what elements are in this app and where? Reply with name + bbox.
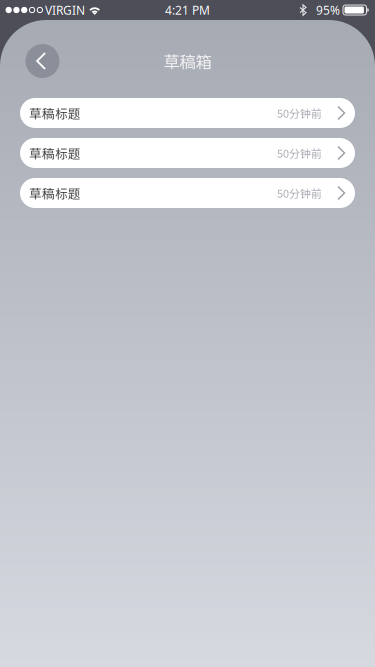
staticText: 草稿标题 [29,144,81,162]
button[interactable]: Back [20,38,65,83]
staticText: 50分钟前 [277,145,322,161]
staticText: 4:21 PM [165,2,210,18]
button[interactable]: 草稿标题 [20,98,355,128]
staticText: VIRGIN [45,2,85,18]
staticText: 草稿标题 [29,104,81,122]
staticText: 95% [316,2,340,18]
staticText: 50分钟前 [277,185,322,201]
staticText: 50分钟前 [277,105,322,121]
button[interactable]: 草稿标题 [20,138,355,168]
staticText: 草稿箱 [163,49,211,73]
staticText: 草稿标题 [29,184,81,202]
button[interactable]: 草稿标题 [20,178,355,208]
